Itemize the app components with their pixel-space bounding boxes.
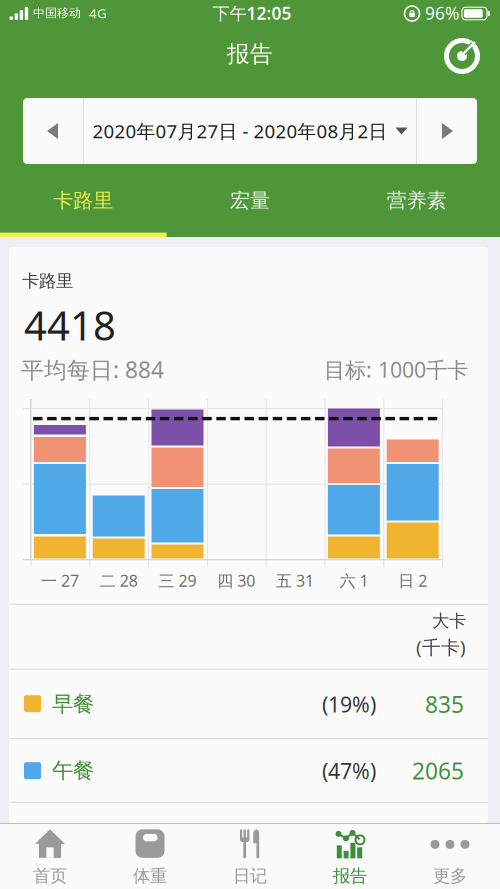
staticText: (47%)	[322, 756, 376, 785]
staticText: 三 29	[158, 570, 196, 591]
staticText: 日 2	[398, 570, 427, 591]
button[interactable]: 卡路里	[0, 167, 166, 234]
button[interactable]: 更多	[402, 827, 498, 888]
staticText: 早餐	[52, 691, 94, 717]
staticText: 报告	[227, 40, 273, 68]
staticText: 大卡	[432, 610, 466, 632]
staticText: 体重	[133, 865, 167, 887]
staticText: (19%)	[322, 690, 376, 718]
staticText: 更多	[433, 865, 467, 887]
button[interactable]: 营养素	[334, 167, 500, 234]
staticText: 下午12:05	[212, 1, 291, 24]
staticText: 五 31	[276, 570, 314, 591]
staticText: 卡路里	[22, 270, 73, 292]
staticText: 日记	[233, 865, 267, 887]
staticText: 96%	[425, 1, 459, 24]
staticText: 营养素	[387, 188, 447, 213]
button[interactable]: 2020年07月27日 - 2020年08月2日	[92, 119, 407, 143]
button[interactable]: 首页	[2, 827, 98, 888]
staticText: 首页	[33, 865, 67, 887]
staticText: (千卡)	[416, 635, 466, 659]
button[interactable]: 报告	[302, 827, 398, 888]
staticText: 中国移动	[33, 6, 81, 20]
button[interactable]: 宏量	[167, 167, 333, 234]
staticText: 2020年07月27日 - 2020年08月2日	[92, 119, 387, 143]
staticText: 835	[425, 689, 464, 719]
staticText: 4G	[89, 4, 107, 22]
staticText: 四 30	[217, 570, 255, 591]
button[interactable]: 日记	[202, 827, 298, 888]
staticText: 卡路里	[53, 188, 113, 213]
staticText: 二 28	[100, 570, 138, 591]
staticText: 六 1	[339, 570, 368, 591]
button[interactable]	[445, 39, 479, 73]
button[interactable]	[40, 120, 66, 142]
button[interactable]: 早餐	[9, 670, 488, 739]
staticText: 目标: 1000千卡	[324, 355, 468, 384]
staticText: 报告	[333, 865, 367, 887]
staticText: 平均每日: 884	[21, 354, 164, 384]
staticText: 一 27	[41, 570, 79, 591]
staticText: 宏量	[230, 188, 270, 213]
staticText: 午餐	[52, 758, 94, 784]
staticText: 2065	[412, 756, 464, 786]
button[interactable]	[434, 120, 460, 142]
staticText: 4418	[24, 298, 116, 351]
button[interactable]: 体重	[102, 827, 198, 888]
button[interactable]: 午餐	[9, 739, 488, 802]
